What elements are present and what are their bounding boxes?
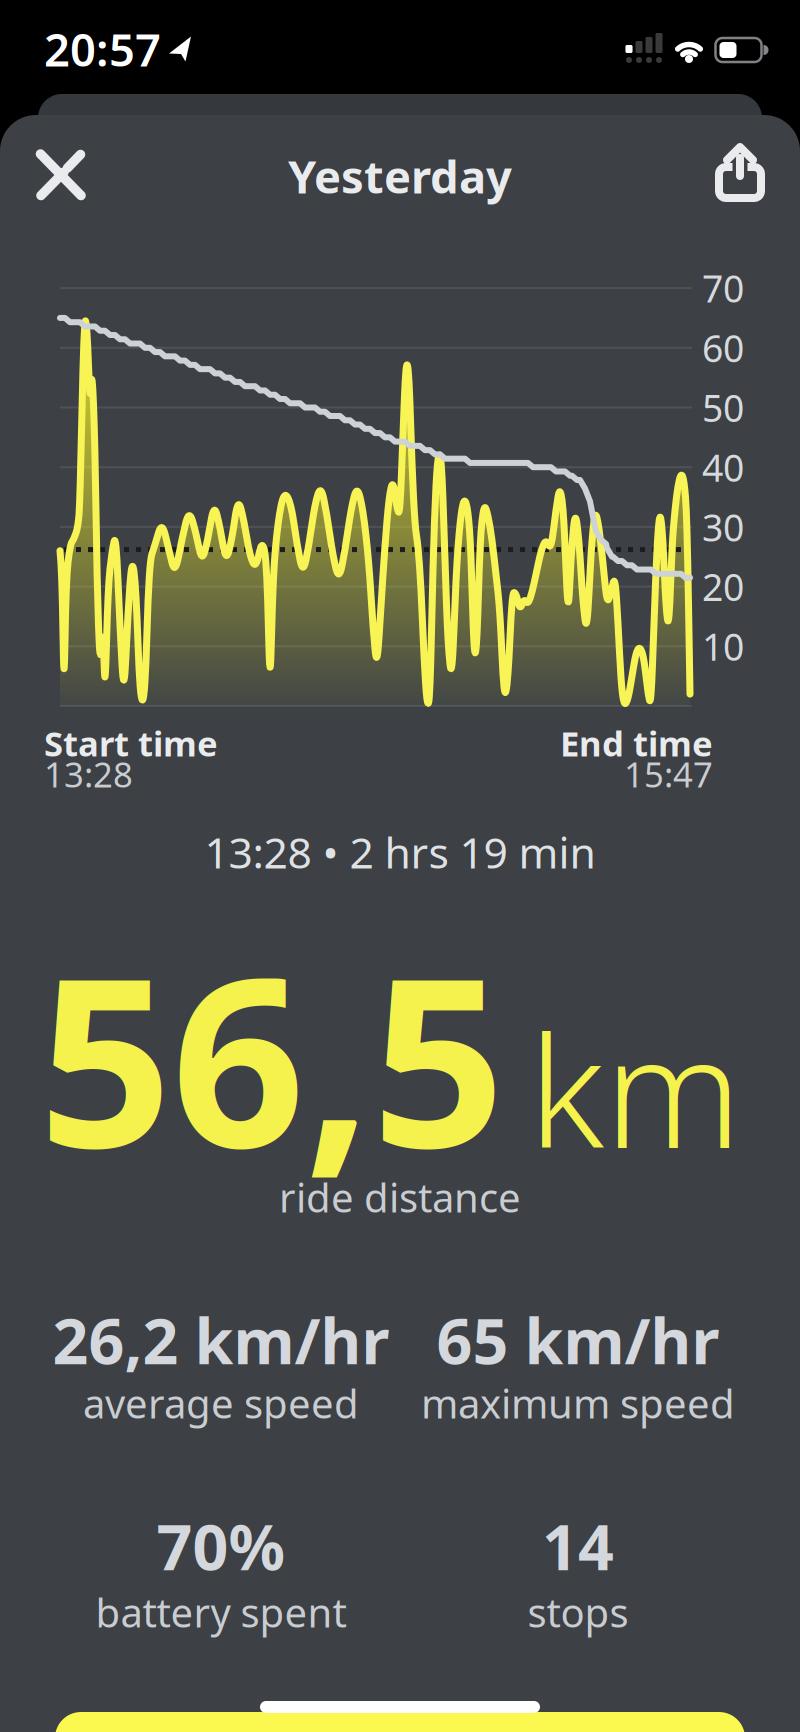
staticText: 40: [702, 442, 744, 492]
staticText: 20:57: [44, 19, 161, 79]
staticText: battery spent: [95, 1585, 346, 1638]
staticText: 65 km/hr: [436, 1298, 719, 1382]
button[interactable]: Share: [710, 146, 770, 210]
staticText: 50: [702, 383, 744, 432]
staticText: 56,5: [38, 902, 504, 1212]
staticText: 26,2 km/hr: [52, 1298, 389, 1382]
staticText: 70: [702, 263, 744, 313]
staticText: stops: [527, 1585, 628, 1638]
staticText: km: [528, 986, 741, 1190]
staticText: 10: [702, 621, 744, 671]
staticText: Yesterday: [288, 146, 512, 206]
staticText: 14: [542, 1504, 614, 1588]
staticText: End time: [560, 720, 713, 766]
staticText: ride distance: [279, 1170, 521, 1223]
staticText: average speed: [83, 1376, 359, 1429]
staticText: 13:28: [44, 751, 133, 797]
staticText: 30: [702, 502, 744, 552]
staticText: 15:47: [624, 751, 713, 797]
button[interactable]: Close: [30, 144, 90, 204]
staticText: maximum speed: [421, 1376, 735, 1429]
button[interactable]: More: [55, 1712, 745, 1732]
staticText: 13:28 • 2 hrs 19 min: [204, 824, 595, 880]
staticText: Start time: [44, 720, 218, 766]
staticText: 70%: [156, 1504, 285, 1588]
staticText: 60: [702, 323, 744, 373]
staticText: 20: [702, 562, 744, 611]
